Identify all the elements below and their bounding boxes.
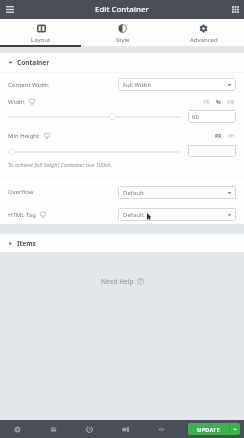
button[interactable]: Settings <box>0 420 35 438</box>
button[interactable]: Advanced <box>163 19 244 47</box>
staticText: Advanced <box>190 36 218 44</box>
staticText: VW <box>227 99 235 105</box>
button[interactable]: Style <box>82 19 163 47</box>
button[interactable]: History <box>71 420 107 438</box>
staticText: Container <box>17 58 50 67</box>
button[interactable]: More update options <box>230 423 240 435</box>
button[interactable]: Container <box>0 53 244 72</box>
button[interactable]: Default <box>118 186 236 199</box>
staticText: % <box>216 98 221 105</box>
button[interactable]: VW <box>226 99 236 105</box>
staticText: Items <box>17 239 36 248</box>
staticText: Style <box>116 36 130 44</box>
button[interactable]: PX <box>203 99 211 105</box>
button[interactable]: Preview Changes <box>143 420 179 438</box>
button[interactable] <box>8 112 181 121</box>
staticText: PX <box>215 132 222 139</box>
staticText: Need Help <box>101 277 134 286</box>
button[interactable]: Full Width <box>118 78 236 91</box>
button[interactable]: Menu <box>0 0 19 19</box>
staticText: Default <box>123 189 144 197</box>
button[interactable]: Default <box>118 208 236 221</box>
button[interactable]: Items <box>0 234 244 252</box>
button[interactable]: Responsive Mode <box>107 420 143 438</box>
button[interactable]: PX <box>214 132 223 139</box>
button[interactable]: VH <box>227 133 236 139</box>
staticText: 60 <box>192 113 199 121</box>
button[interactable] <box>8 147 181 156</box>
button[interactable] <box>188 145 236 157</box>
staticText: ? <box>139 278 142 285</box>
staticText: Edit Container <box>95 4 149 15</box>
button[interactable]: 60 <box>188 110 236 123</box>
staticText: PX <box>204 99 210 105</box>
staticText: To achieve full height Container use 100… <box>8 161 113 168</box>
button[interactable]: UPDATE <box>188 423 229 435</box>
staticText: Layout <box>31 36 51 44</box>
button[interactable]: Need Help <box>0 277 244 286</box>
staticText: HTML Tag <box>8 211 36 219</box>
button[interactable]: Widgets panel <box>226 0 244 19</box>
button[interactable]: % <box>215 98 222 105</box>
staticText: Min Height <box>8 132 40 140</box>
staticText: Content Width <box>8 81 49 89</box>
staticText: UPDATE <box>197 426 220 433</box>
staticText: Overflow <box>8 188 34 196</box>
staticText: VH <box>228 133 235 139</box>
staticText: Full Width <box>123 81 152 89</box>
button[interactable]: Layout <box>0 19 82 47</box>
button[interactable]: Navigator <box>35 420 71 438</box>
staticText: Width <box>8 98 25 106</box>
staticText: Default <box>123 211 144 219</box>
